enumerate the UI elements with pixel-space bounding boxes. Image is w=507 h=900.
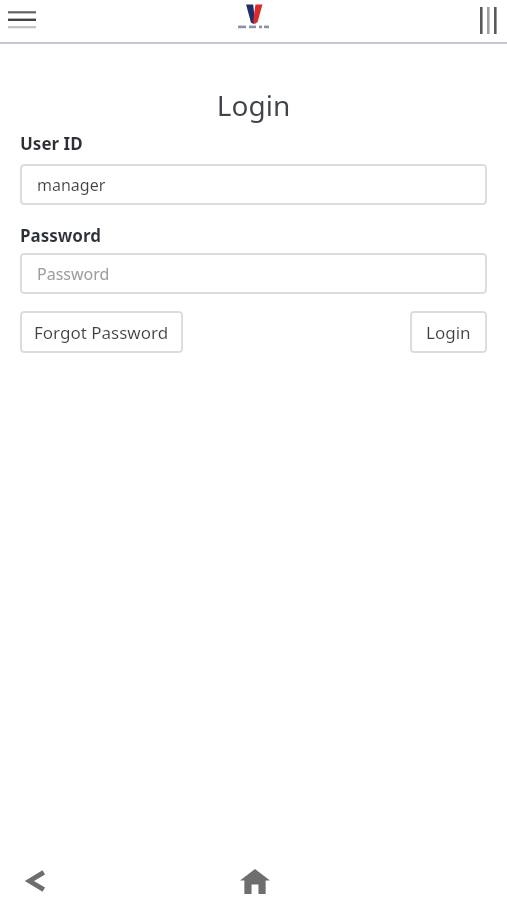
staticText: Login	[426, 321, 471, 344]
button[interactable]: manager	[20, 164, 487, 205]
staticText: Forgot Password	[34, 321, 169, 344]
staticText: User ID	[20, 132, 83, 155]
staticText: Login	[0, 86, 507, 124]
button[interactable]: Password	[20, 253, 487, 294]
button[interactable]: More options	[480, 7, 496, 34]
button[interactable]: Back	[14, 860, 56, 900]
staticText: manager	[37, 174, 106, 196]
staticText: Password	[37, 263, 110, 285]
button[interactable]: Login	[410, 311, 487, 353]
button[interactable]: Forgot Password	[20, 311, 183, 353]
button[interactable]: Home	[234, 860, 276, 900]
staticText: Password	[20, 224, 101, 247]
button[interactable]: Menu	[8, 11, 36, 31]
